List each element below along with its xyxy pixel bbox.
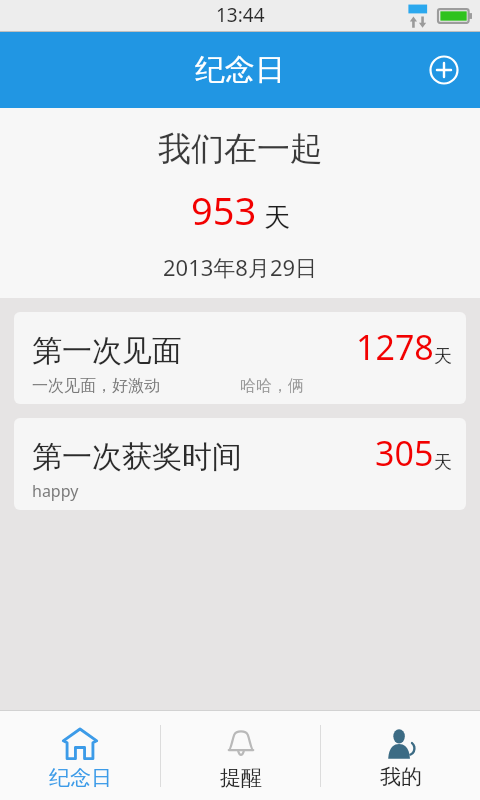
staticText: 我的 (380, 764, 422, 790)
staticText: 953 (191, 184, 257, 236)
staticText: 天 (264, 201, 290, 234)
staticText: 纪念日 (195, 51, 285, 89)
staticText: 第一次见面 (32, 332, 182, 370)
staticText: 2013年8月29日 (163, 252, 318, 282)
staticText: 305 (375, 430, 434, 476)
staticText: 我们在一起 (158, 128, 323, 170)
staticText: 提醒 (220, 765, 262, 791)
staticText: 天 (434, 345, 452, 368)
staticText: 1278 (356, 324, 434, 370)
button[interactable]: 纪念日 (0, 711, 160, 800)
button[interactable]: Add anniversary (420, 46, 468, 94)
staticText: 哈哈，俩 (240, 376, 304, 396)
button[interactable]: 我的 (321, 711, 480, 800)
staticText: 第一次获奖时间 (32, 438, 242, 476)
button[interactable]: 第一次见面 (14, 312, 466, 404)
staticText: happy (32, 480, 79, 502)
button[interactable]: 第一次获奖时间 (14, 418, 466, 510)
button[interactable]: 提醒 (161, 711, 320, 800)
staticText: 纪念日 (49, 765, 112, 791)
staticText: 13:44 (216, 2, 265, 28)
staticText: 一次见面，好激动 (32, 376, 160, 396)
staticText: 天 (434, 451, 452, 474)
